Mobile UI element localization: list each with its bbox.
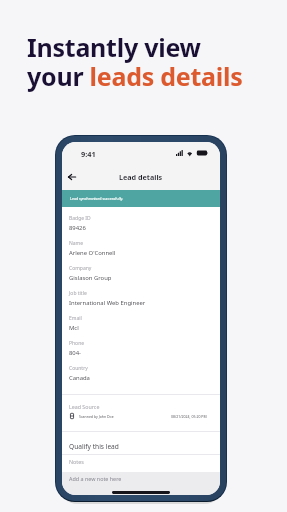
staticText: Badge ID [69,215,91,222]
staticText: Notes [69,458,84,465]
staticText: Company [69,265,92,272]
staticText: 804- [69,349,82,357]
staticText: Country [69,365,88,372]
staticText: Arlene O'Connell [69,249,116,257]
staticText: 08/21/2024, 05:20 PM [171,414,207,419]
staticText: Instantly view your leads details [27,30,243,94]
staticText: International Web Engineer [69,299,146,307]
staticText: 9:41 [81,149,96,159]
staticText: Lead Source [69,403,100,410]
button[interactable]: Qualify this lead [62,432,220,454]
staticText: Name [69,240,84,247]
staticText: Mcl [69,324,79,332]
staticText: Scanned by John Doe [79,414,114,419]
staticText: Lead details [119,172,163,182]
staticText: Canada [69,374,90,382]
staticText: Lead synchronised successfully. [70,196,124,201]
staticText: 89426 [69,224,86,232]
staticText: Qualify this lead [69,442,119,451]
staticText: Phone [69,340,85,347]
staticText: Job title [69,290,87,297]
staticText: Gislason Group [69,274,112,282]
staticText: Email [69,315,82,322]
staticText: Add a new note here [69,475,122,482]
button[interactable]: Back [64,169,80,185]
